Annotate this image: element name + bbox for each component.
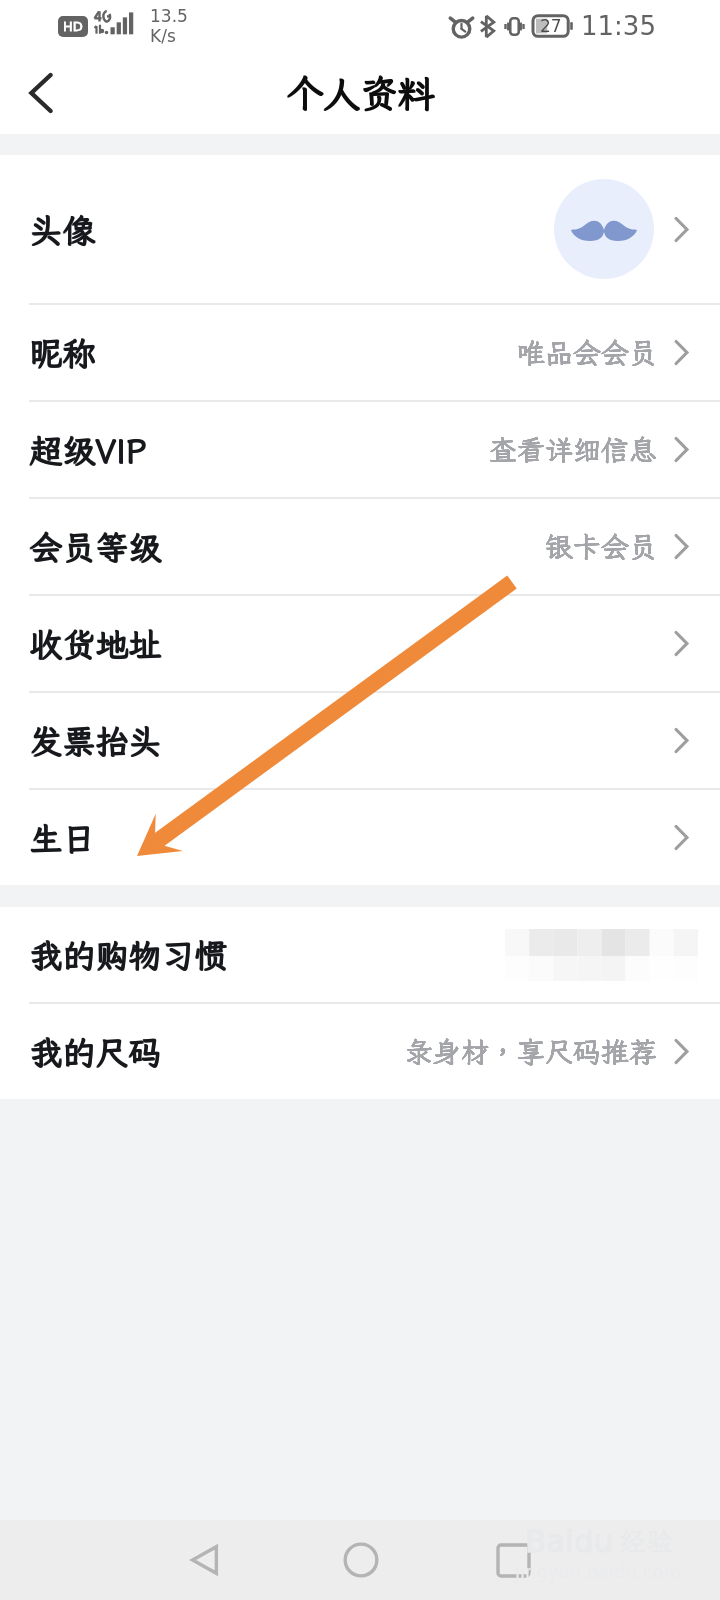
staticText: 发票抬头 (29, 720, 161, 763)
button[interactable]: 我的购物习惯 (0, 907, 720, 1004)
staticText: 27 (540, 16, 562, 36)
staticText: 录身材，享尺码推荐 (405, 1033, 658, 1070)
staticText: 生日 (30, 817, 96, 860)
staticText: 个人资料 (286, 70, 434, 119)
button[interactable]: 我的尺码 (0, 1004, 720, 1099)
staticText: 超级VIP (29, 428, 146, 471)
staticText: 收货地址 (29, 622, 161, 665)
staticText: jingyan.baidu.com (515, 1561, 682, 1582)
staticText: 个人资料 (287, 70, 435, 119)
staticText: 昵称 (29, 331, 95, 374)
button[interactable]: Home (284, 1520, 437, 1600)
staticText: 收货地址 (29, 623, 161, 666)
staticText: 会员等级 (30, 525, 162, 568)
staticText: 头像 (29, 208, 95, 251)
staticText: K/s (150, 26, 176, 46)
staticText: 我的尺码 (30, 1031, 162, 1074)
staticText: 查看详细信息 (489, 431, 658, 468)
staticText: 录身材，享尺码推荐 (405, 1033, 658, 1070)
staticText: 超级VIP (30, 429, 147, 472)
staticText: 银卡会员 (545, 528, 658, 565)
button[interactable]: 会员等级 (0, 499, 720, 596)
staticText: 发票抬头 (29, 719, 161, 762)
staticText: 会员等级 (29, 525, 161, 568)
staticText: 唯品会会员 (517, 334, 658, 371)
staticText: 我的购物习惯 (29, 934, 227, 977)
staticText: 银卡会员 (545, 528, 658, 565)
staticText: 生日 (29, 817, 95, 860)
button[interactable]: 超级VIP (0, 402, 720, 499)
staticText: 会员等级 (29, 526, 161, 569)
staticText: 昵称 (30, 331, 96, 374)
staticText: 我的尺码 (30, 1030, 162, 1073)
staticText: 个人资料 (286, 69, 434, 118)
staticText: 发票抬头 (30, 720, 162, 763)
staticText: 超级VIP (29, 429, 146, 472)
staticText: 昵称 (30, 332, 96, 375)
button[interactable]: Back (130, 1520, 284, 1600)
staticText: 头像 (29, 209, 95, 252)
button[interactable]: 生日 (0, 790, 720, 885)
staticText: 查看详细信息 (489, 431, 658, 468)
staticText: 录身材，享尺码推荐 (405, 1033, 658, 1070)
staticText: 13.5 (150, 6, 188, 26)
staticText: 我的尺码 (29, 1030, 161, 1073)
staticText: 唯品会会员 (517, 334, 658, 371)
button[interactable]: Recent apps (437, 1520, 590, 1600)
staticText: 11:35 (581, 11, 656, 41)
staticText: 昵称 (29, 332, 95, 375)
button[interactable]: 昵称 (0, 305, 720, 402)
staticText: 发票抬头 (30, 719, 162, 762)
staticText: 银卡会员 (545, 528, 658, 565)
staticText: HD (63, 19, 83, 34)
staticText: 个人资料 (287, 69, 435, 118)
staticText: 查看详细信息 (489, 431, 658, 468)
staticText: 我的尺码 (29, 1031, 161, 1074)
staticText: 会员等级 (30, 526, 162, 569)
staticText: 生日 (29, 816, 95, 859)
staticText: 头像 (30, 209, 96, 252)
staticText: 收货地址 (30, 623, 162, 666)
staticText: 收货地址 (30, 622, 162, 665)
staticText: 唯品会会员 (517, 334, 658, 371)
button[interactable]: 收货地址 (0, 596, 720, 693)
staticText: 头像 (30, 208, 96, 251)
staticText: 我的购物习惯 (29, 933, 227, 976)
staticText: 查看详细信息 (489, 431, 658, 468)
staticText: 我的购物习惯 (30, 933, 228, 976)
button[interactable]: Back (0, 52, 82, 134)
staticText: 录身材，享尺码推荐 (405, 1033, 658, 1070)
staticText: 超级VIP (30, 428, 147, 471)
staticText: Baidu (525, 1523, 614, 1559)
staticText: 我的购物习惯 (30, 934, 228, 977)
button[interactable]: 头像 (0, 155, 720, 305)
staticText: 唯品会会员 (517, 334, 658, 371)
staticText: 银卡会员 (545, 528, 658, 565)
button[interactable]: 发票抬头 (0, 693, 720, 790)
staticText: 生日 (30, 816, 96, 859)
